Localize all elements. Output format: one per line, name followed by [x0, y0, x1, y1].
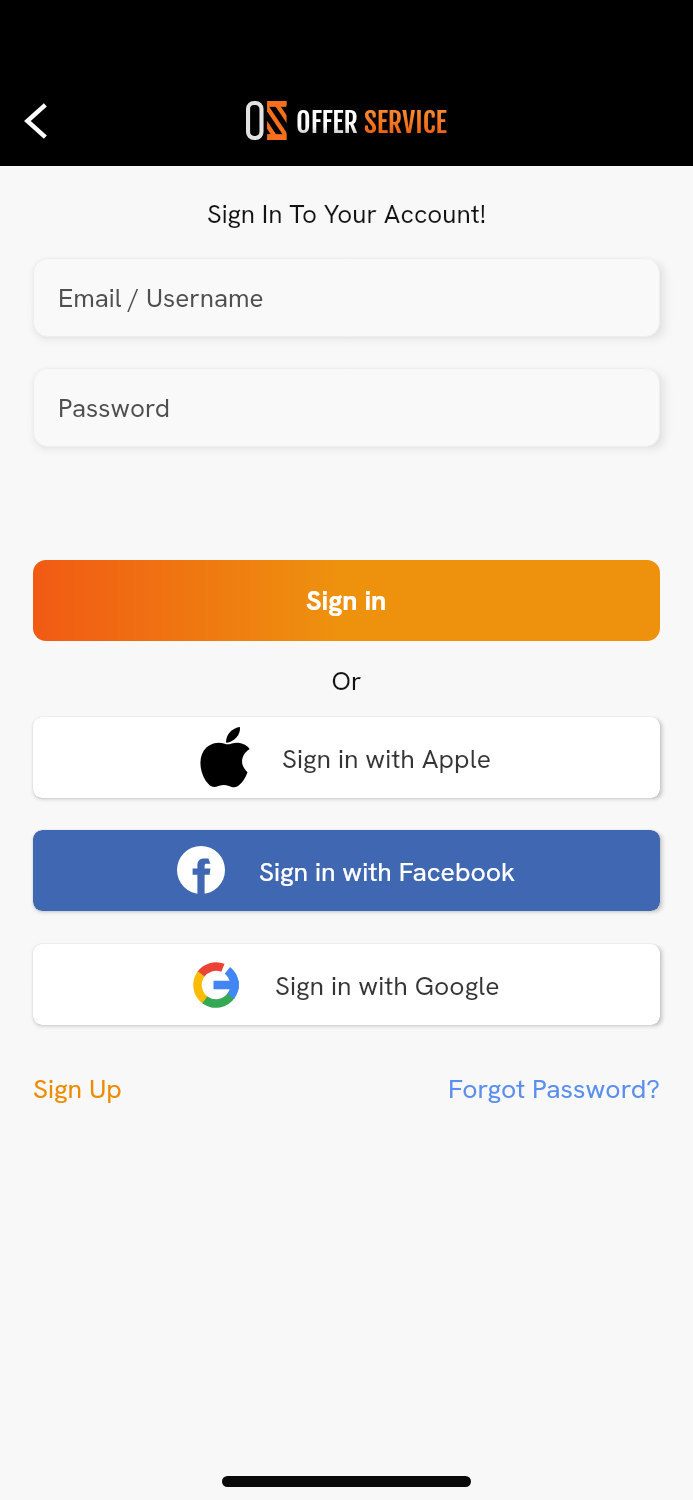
staticText: Sign in with Google	[275, 968, 500, 1003]
button[interactable]: Sign Up	[33, 1071, 122, 1106]
staticText: SERVICE	[364, 105, 447, 140]
staticText: Email / Username	[58, 281, 264, 315]
button[interactable]: Password	[33, 368, 660, 447]
staticText: Sign in with Facebook	[259, 854, 516, 889]
staticText: OFFER	[296, 105, 358, 140]
button[interactable]: Sign in	[33, 560, 660, 641]
staticText: Sign in	[306, 583, 387, 618]
button[interactable]: Sign in with Google	[33, 944, 660, 1025]
staticText: Password	[58, 391, 171, 425]
staticText: Sign In To Your Account!	[0, 197, 693, 231]
button[interactable]: Email / Username	[33, 258, 660, 337]
button[interactable]: Sign in with Apple	[33, 717, 660, 798]
staticText: Or	[0, 664, 693, 698]
button[interactable]: Sign in with Facebook	[33, 830, 660, 911]
staticText: Sign in with Apple	[282, 741, 492, 776]
button[interactable]: Forgot Password?	[448, 1071, 660, 1106]
button[interactable]: Back	[16, 98, 58, 144]
